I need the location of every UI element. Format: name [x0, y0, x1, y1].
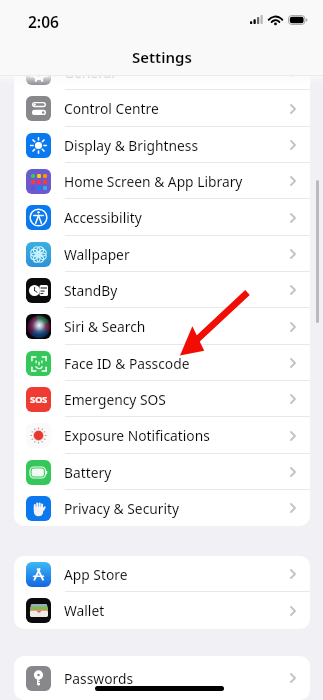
staticText: Battery: [64, 463, 112, 482]
staticText: Siri & Search: [64, 317, 146, 336]
staticText: Emergency SOS: [64, 390, 166, 409]
button[interactable]: Accessibility: [14, 199, 310, 236]
button[interactable]: SOS: [14, 381, 310, 417]
button[interactable]: Wallet: [14, 592, 310, 629]
button[interactable]: Battery: [14, 454, 310, 490]
staticText: SOS: [30, 393, 47, 406]
staticText: Accessibility: [64, 208, 142, 227]
button[interactable]: Siri & Search: [14, 308, 310, 345]
staticText: Face ID & Passcode: [64, 354, 190, 373]
button[interactable]: Home Screen & App Library: [14, 163, 310, 199]
staticText: Privacy & Security: [64, 499, 180, 518]
button[interactable]: StandBy: [14, 272, 310, 308]
button[interactable]: Face ID & Passcode: [14, 345, 310, 381]
staticText: Settings: [132, 47, 192, 66]
staticText: Control Centre: [64, 99, 159, 118]
staticText: Exposure Notifications: [64, 426, 210, 445]
staticText: App Store: [64, 565, 128, 584]
button[interactable]: Wallpaper: [14, 236, 310, 272]
button[interactable]: Passwords: [14, 656, 310, 700]
staticText: StandBy: [64, 281, 118, 300]
staticText: Display & Brightness: [64, 136, 199, 155]
button[interactable]: Exposure Notifications: [14, 417, 310, 454]
staticText: 2:06: [28, 11, 59, 32]
staticText: Passwords: [64, 669, 134, 688]
button[interactable]: General: [14, 54, 310, 90]
button[interactable]: Privacy & Security: [14, 490, 310, 526]
staticText: Wallet: [64, 601, 105, 620]
button[interactable]: Control Centre: [14, 90, 310, 127]
button[interactable]: Display & Brightness: [14, 127, 310, 163]
staticText: Home Screen & App Library: [64, 172, 243, 191]
staticText: Wallpaper: [64, 245, 130, 264]
button[interactable]: App Store: [14, 556, 310, 592]
staticText: General: [64, 63, 115, 82]
